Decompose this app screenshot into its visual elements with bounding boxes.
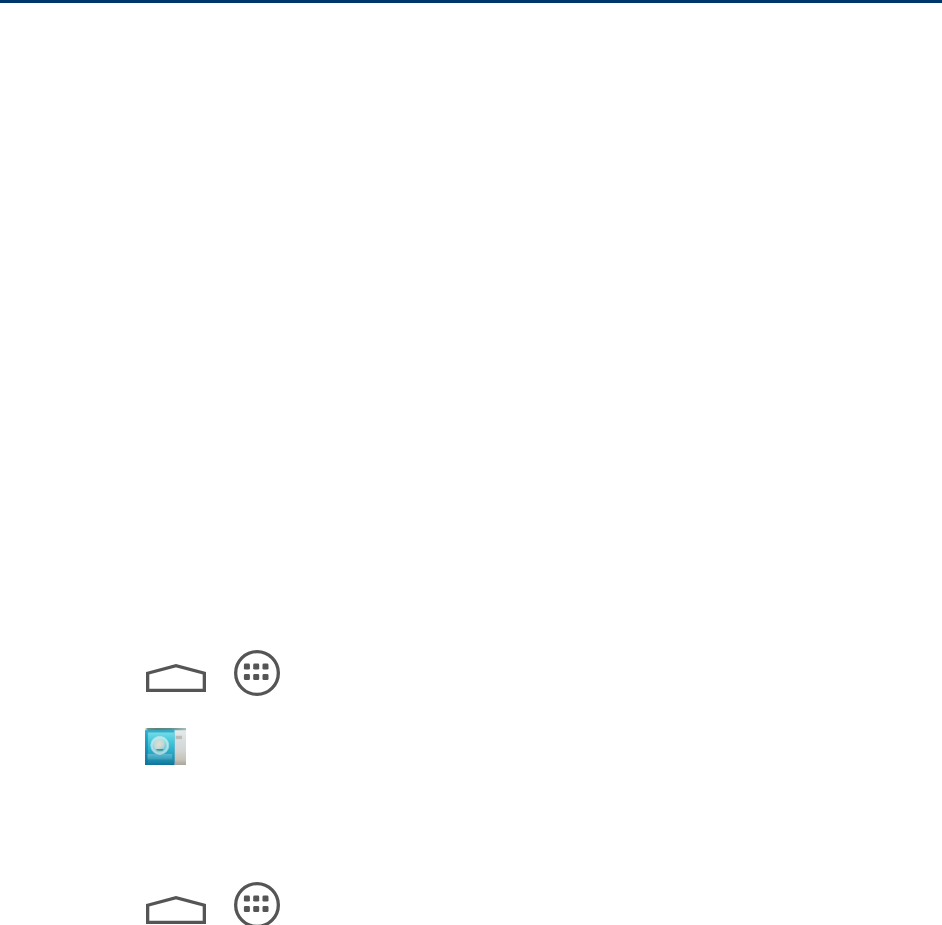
button[interactable]: All apps <box>234 882 280 925</box>
button[interactable]: All apps <box>234 650 280 696</box>
button[interactable]: Screenshot thumbnail <box>145 728 186 765</box>
button[interactable]: Home <box>146 896 206 924</box>
button[interactable]: Home <box>146 664 206 692</box>
